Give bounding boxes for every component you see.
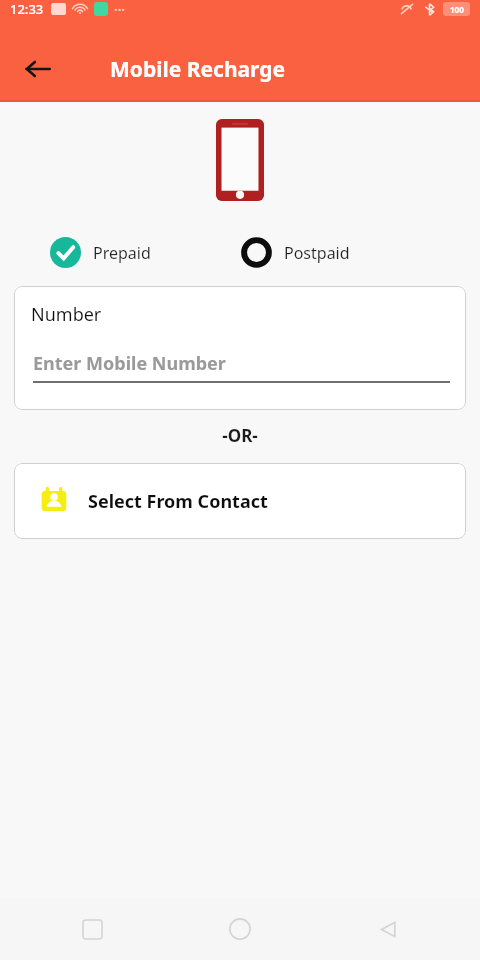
staticText: ··· — [114, 0, 125, 18]
staticText: Mobile Recharge — [110, 55, 286, 84]
staticText: Number — [31, 302, 102, 327]
button[interactable]: Back — [14, 45, 62, 93]
button[interactable]: Select From Contact — [14, 463, 466, 539]
staticText: Select From Contact — [88, 489, 268, 514]
staticText: Prepaid — [93, 242, 151, 264]
staticText: Postpaid — [284, 242, 350, 264]
button[interactable]: Postpaid — [241, 237, 350, 268]
staticText: Enter Mobile Number — [33, 351, 226, 376]
staticText: 12:33 — [10, 0, 44, 18]
button[interactable]: Back — [366, 907, 410, 951]
button[interactable]: Number — [14, 286, 466, 410]
button[interactable]: Home — [218, 907, 262, 951]
button[interactable]: Prepaid — [50, 237, 151, 268]
staticText: 100 — [450, 4, 464, 15]
button[interactable]: Recent apps — [70, 907, 114, 951]
staticText: -OR- — [222, 424, 258, 447]
